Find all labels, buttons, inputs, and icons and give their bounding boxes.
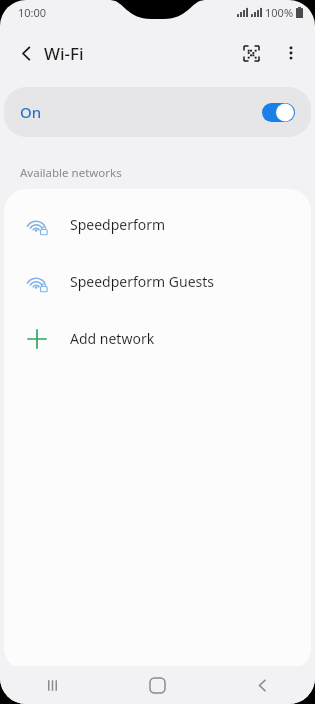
button[interactable]: On bbox=[4, 87, 311, 137]
staticText: Add network bbox=[70, 329, 155, 348]
button[interactable]: Speedperform bbox=[4, 196, 311, 253]
staticText: Speedperform bbox=[70, 215, 166, 234]
button[interactable]: Add network bbox=[4, 310, 311, 367]
button[interactable]: Speedperform Guests bbox=[4, 253, 311, 310]
staticText: On bbox=[20, 102, 42, 122]
button[interactable]: Recent apps bbox=[0, 666, 105, 704]
staticText: 100% bbox=[265, 5, 294, 20]
button[interactable]: More options bbox=[271, 33, 311, 73]
staticText: Speedperform Guests bbox=[70, 272, 214, 291]
staticText: 10:00 bbox=[18, 5, 47, 20]
button[interactable]: Back bbox=[6, 33, 46, 73]
staticText: Available networks bbox=[20, 165, 122, 181]
staticText: Wi-Fi bbox=[44, 42, 84, 65]
button[interactable]: Scan QR code bbox=[231, 33, 271, 73]
button[interactable]: Back bbox=[210, 666, 315, 704]
button[interactable]: Home bbox=[105, 666, 210, 704]
